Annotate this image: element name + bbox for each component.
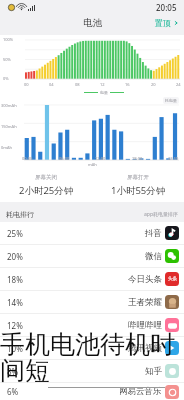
staticText: 网易云音乐	[119, 386, 162, 397]
staticText: 25%	[7, 228, 23, 239]
button[interactable]: 8%	[0, 360, 184, 382]
staticText: 12:00	[95, 156, 106, 161]
staticText: 20	[151, 82, 156, 87]
staticText: 电池	[83, 17, 102, 29]
staticText: 24	[176, 82, 181, 87]
staticText: 08	[75, 82, 80, 87]
staticText: 12	[100, 82, 105, 87]
staticText: 2小时25分钟	[19, 184, 74, 197]
staticText: 王者荣耀	[128, 297, 162, 308]
staticText: 00:00	[22, 156, 33, 161]
staticText: 300mAh	[1, 103, 17, 108]
staticText: 150mAh	[1, 124, 17, 129]
staticText: 腾讯视频	[128, 343, 162, 354]
button[interactable]: 屏幕关闭	[0, 168, 92, 202]
staticText: 20:05	[156, 2, 177, 13]
staticText: 8%	[7, 366, 19, 377]
staticText: 16	[125, 82, 130, 87]
staticText: 电量	[100, 90, 108, 95]
staticText: 04	[49, 82, 54, 87]
staticText: 18:00	[132, 156, 143, 161]
button[interactable]: 18%	[0, 268, 184, 290]
staticText: 今日头条	[128, 274, 162, 285]
button[interactable]: 25%	[0, 222, 184, 244]
staticText: app耗电量排序	[144, 211, 178, 218]
staticText: 哔哩哔哩	[128, 320, 162, 331]
staticText: 手机电池待机时间短	[0, 329, 184, 387]
staticText: 14%	[7, 297, 23, 308]
staticText: mAh	[88, 162, 97, 167]
button[interactable]: 10%	[0, 337, 184, 359]
staticText: 50%	[3, 57, 11, 62]
staticText: 12%	[7, 320, 23, 331]
staticText: 置顶	[155, 18, 171, 28]
button[interactable]: 20%	[0, 245, 184, 267]
staticText: 06:00	[59, 156, 70, 161]
staticText: 6%	[7, 386, 19, 397]
button[interactable]: 6%	[0, 383, 184, 400]
staticText: 耗电量	[165, 98, 177, 103]
staticText: 20%	[7, 251, 23, 262]
staticText: 屏幕打开	[127, 174, 149, 181]
staticText: 100%	[3, 37, 14, 42]
staticText: 0mAh	[1, 145, 13, 150]
staticText: 微信	[145, 251, 162, 262]
staticText: 18%	[7, 274, 23, 285]
button[interactable]: 屏幕打开	[92, 168, 184, 202]
staticText: 00	[24, 82, 29, 87]
staticText: 23:59	[168, 156, 179, 161]
staticText: 知乎	[145, 366, 162, 377]
button[interactable]: 14%	[0, 291, 184, 313]
staticText: 屏幕关闭	[35, 174, 57, 181]
staticText: 1小时55分钟	[111, 184, 166, 197]
button[interactable]: 12%	[0, 314, 184, 336]
staticText: 耗电排行	[6, 210, 34, 219]
staticText: 头条	[168, 276, 177, 282]
button[interactable]: 置顶	[150, 16, 184, 30]
staticText: 抖音	[145, 228, 162, 239]
staticText: 10%	[7, 343, 23, 354]
staticText: 0%	[3, 76, 9, 81]
